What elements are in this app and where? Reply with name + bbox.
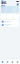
staticText: Today [1,1,7,8]
button[interactable]: Tab [15,60,20,64]
button[interactable]: Tab [10,60,15,64]
button[interactable]: Tab [5,60,10,64]
button[interactable]: Tab [0,60,5,64]
staticText: 9:41 [1,0,5,5]
button[interactable] [1,23,19,27]
button[interactable] [1,20,19,23]
button[interactable]: Profile [17,3,19,6]
